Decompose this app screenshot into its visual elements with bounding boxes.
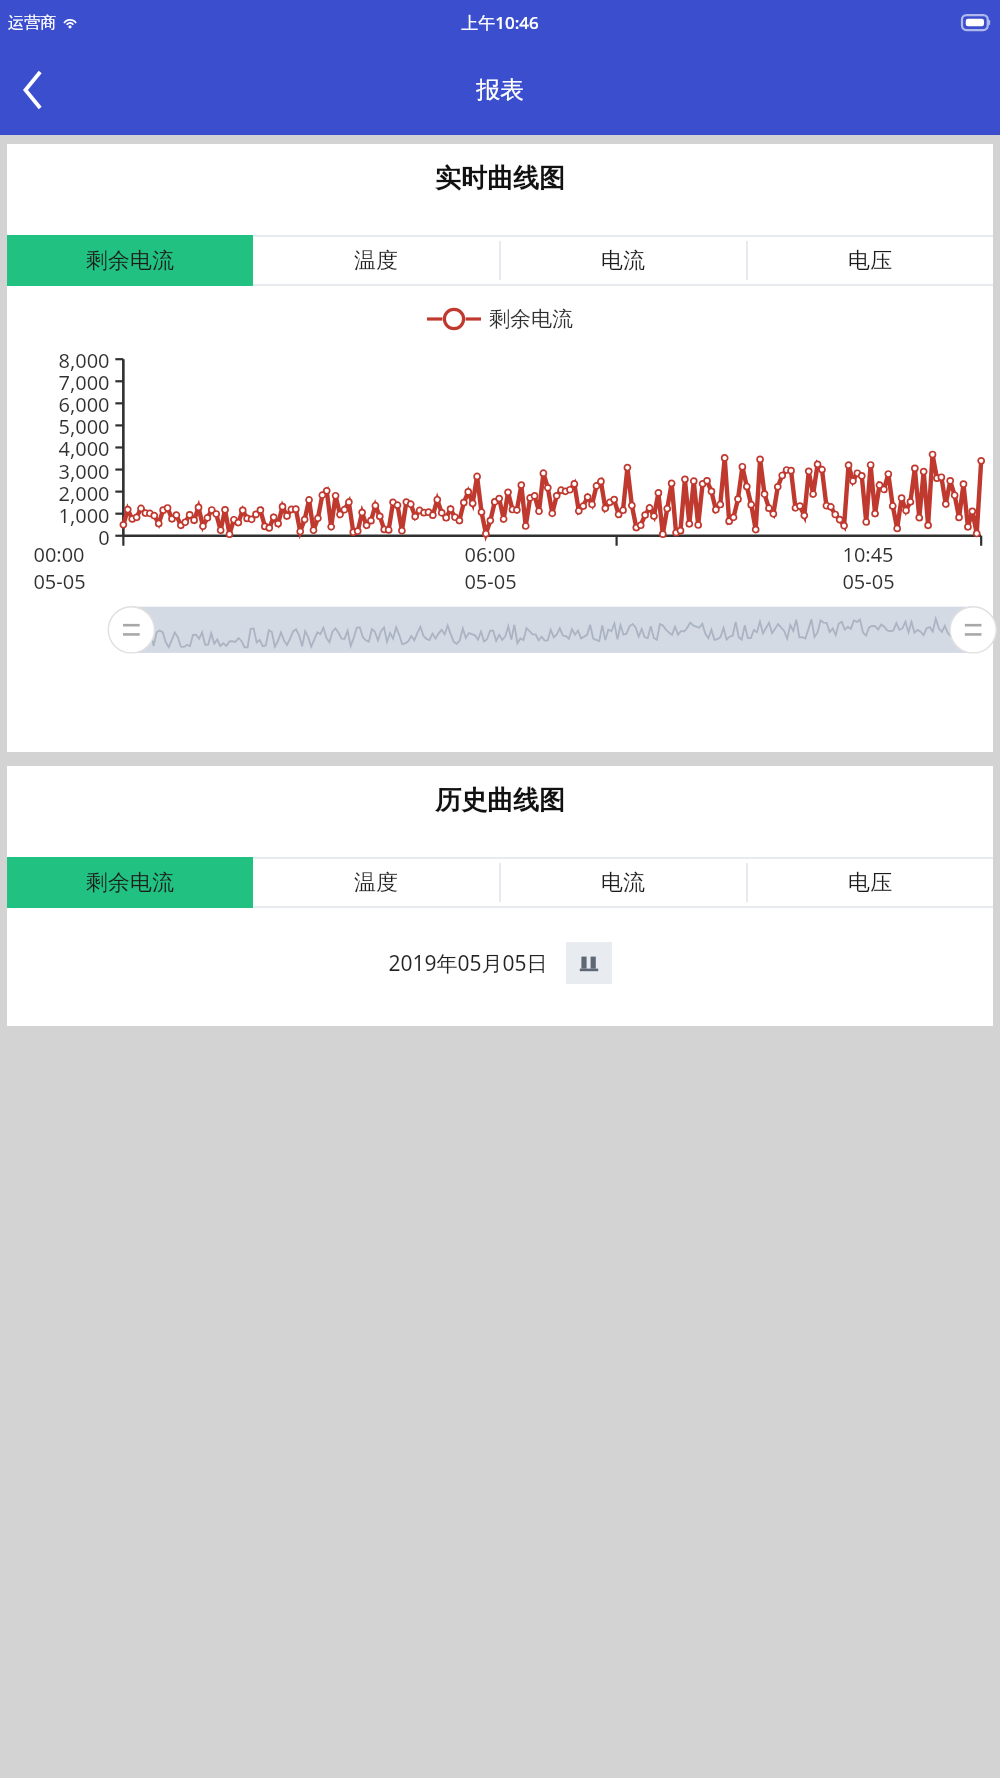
- staticText: 7,000: [58, 369, 110, 396]
- button[interactable]: Back: [0, 57, 66, 123]
- staticText: 温度: [354, 247, 398, 275]
- staticText: 6,000: [58, 391, 110, 418]
- staticText: 温度: [354, 869, 398, 897]
- staticText: 报表: [476, 75, 524, 105]
- staticText: 电流: [601, 247, 645, 275]
- staticText: 5,000: [58, 413, 110, 440]
- button[interactable]: 温度: [253, 857, 499, 908]
- staticText: 3,000: [58, 458, 110, 485]
- button[interactable]: 剩余电流: [7, 235, 253, 286]
- staticText: 06:00: [464, 541, 516, 568]
- button[interactable]: Select date: [566, 942, 612, 984]
- staticText: 10:45: [842, 541, 894, 568]
- staticText: 电压: [848, 247, 892, 275]
- staticText: 电流: [601, 869, 645, 897]
- button[interactable]: 剩余电流: [7, 857, 253, 908]
- button[interactable]: 电压: [746, 235, 993, 286]
- button[interactable]: 电压: [746, 857, 993, 908]
- button[interactable]: 温度: [253, 235, 499, 286]
- staticText: 1,000: [58, 502, 110, 529]
- staticText: 上午10:46: [461, 11, 539, 34]
- staticText: 05-05: [33, 568, 86, 595]
- staticText: 实时曲线图: [435, 162, 565, 195]
- staticText: 运营商: [8, 13, 56, 33]
- staticText: 4,000: [58, 435, 110, 462]
- staticText: 剩余电流: [489, 306, 573, 332]
- button[interactable]: 电流: [499, 235, 746, 286]
- staticText: 05-05: [842, 568, 895, 595]
- staticText: 2,000: [58, 480, 110, 507]
- staticText: 0: [98, 524, 110, 551]
- staticText: 8,000: [58, 347, 110, 374]
- staticText: 历史曲线图: [435, 784, 565, 817]
- staticText: 00:00: [33, 541, 85, 568]
- staticText: 05-05: [464, 568, 517, 595]
- staticText: 剩余电流: [86, 247, 174, 275]
- staticText: 剩余电流: [86, 869, 174, 897]
- staticText: 电压: [848, 869, 892, 897]
- button[interactable]: 电流: [499, 857, 746, 908]
- staticText: 2019年05月05日: [388, 949, 548, 978]
